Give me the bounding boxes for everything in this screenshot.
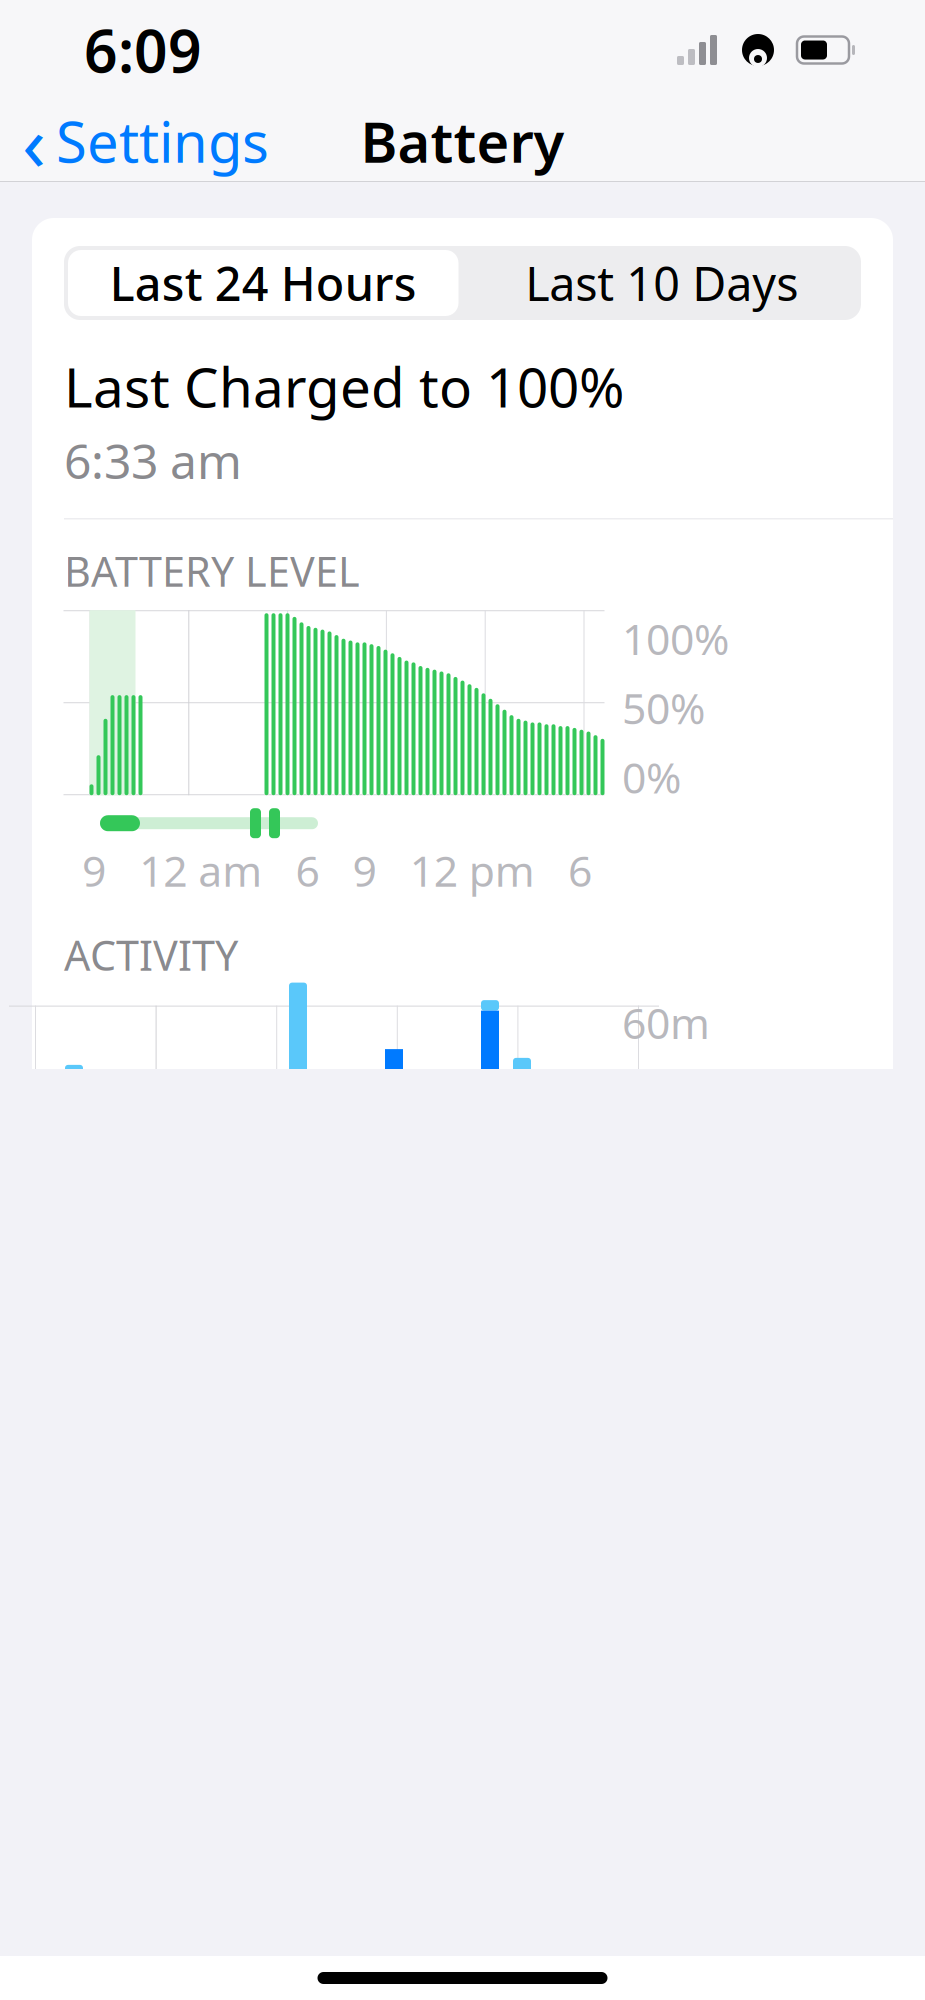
staticText: 6:33 am <box>64 429 242 492</box>
staticText: BATTERY LEVEL <box>64 543 360 598</box>
staticText: 0% <box>622 749 681 805</box>
staticText: Settings <box>56 104 269 178</box>
staticText: 60m <box>622 994 710 1051</box>
staticText: Last 24 Hours <box>110 252 417 314</box>
staticText: 30m <box>622 1061 710 1117</box>
button[interactable]: Last 24 Hours <box>64 246 462 320</box>
staticText: 6 <box>568 842 592 899</box>
staticText: ACTIVITY <box>64 927 238 982</box>
staticText: ‹ <box>22 90 46 192</box>
staticText: 100% <box>622 610 729 667</box>
staticText: 12 pm <box>410 842 535 899</box>
staticText: Battery <box>360 104 564 178</box>
button[interactable]: Last 10 Days <box>462 250 861 316</box>
button[interactable]: Phone <box>0 1916 925 2000</box>
staticText: Phone <box>178 1930 343 2000</box>
staticText: 9 <box>82 842 106 899</box>
staticText: 50% <box>622 679 705 736</box>
staticText: 6:09 <box>84 11 202 89</box>
button[interactable]: ‹ <box>0 80 269 202</box>
staticText: Last Charged to 100% <box>64 350 624 423</box>
staticText: 12 am <box>139 842 262 899</box>
staticText: Last 10 Days <box>525 252 798 314</box>
staticText: 10% <box>787 1931 893 2000</box>
staticText: 9 <box>353 842 377 899</box>
staticText: 6 <box>295 842 319 899</box>
